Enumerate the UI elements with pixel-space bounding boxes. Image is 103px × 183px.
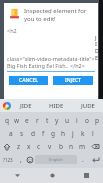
button[interactable]: a	[5, 127, 16, 140]
button[interactable]: r	[32, 114, 42, 127]
button[interactable]: m	[77, 140, 88, 153]
button[interactable]: English	[35, 155, 77, 164]
staticText: x	[27, 142, 31, 151]
button[interactable]: b	[55, 140, 66, 153]
button[interactable]: l	[88, 127, 98, 140]
button[interactable]: u	[62, 114, 72, 127]
staticText: <h2	[7, 27, 17, 34]
button[interactable]: o	[82, 114, 92, 127]
button[interactable]: y	[52, 114, 62, 127]
button[interactable]: q	[1, 114, 12, 127]
button[interactable]: f	[38, 127, 48, 140]
button[interactable]: x	[24, 140, 34, 153]
staticText: Inspected element for you to edit!	[24, 7, 87, 23]
staticText: HIDE	[49, 102, 64, 110]
staticText: s	[20, 129, 24, 138]
button[interactable]: t	[42, 114, 52, 127]
other: Inspector icon	[9, 8, 20, 19]
staticText: h	[61, 129, 66, 138]
button[interactable]: j	[68, 127, 78, 140]
staticText: t	[46, 116, 49, 125]
staticText: .	[82, 155, 84, 164]
staticText: n	[69, 142, 74, 151]
staticText: JIDE	[20, 102, 32, 110]
staticText: o	[85, 116, 89, 125]
staticText: z	[17, 142, 21, 151]
button[interactable]: Shift	[0, 140, 14, 153]
button[interactable]: ?123	[0, 153, 16, 166]
button[interactable]: Backspace	[88, 140, 103, 153]
staticText: j	[72, 129, 74, 138]
staticText: b	[59, 142, 63, 151]
button[interactable]: e	[22, 114, 32, 127]
button[interactable]: CANCEL	[9, 76, 48, 85]
staticText: Big Fish Eating Eel Fish.. </h2>	[7, 62, 85, 69]
button[interactable]: s	[16, 127, 27, 140]
button[interactable]: HIDE	[41, 99, 72, 112]
button[interactable]: Home	[35, 168, 69, 183]
staticText: d	[31, 129, 35, 138]
button[interactable]: Google keyboard options	[3, 102, 11, 110]
button[interactable]: JIDE	[11, 99, 41, 112]
staticText: CANCEL	[19, 77, 38, 84]
staticText: f	[42, 129, 45, 138]
button[interactable]: Recent apps	[69, 168, 103, 183]
staticText: r	[36, 116, 39, 125]
button[interactable]: c	[34, 140, 44, 153]
staticText: ?123	[3, 157, 13, 163]
button[interactable]: JUDE	[72, 99, 103, 112]
staticText: g	[51, 129, 55, 138]
button[interactable]: z	[14, 140, 24, 153]
button[interactable]: h	[58, 127, 68, 140]
button[interactable]: Back	[0, 168, 35, 183]
staticText: e	[25, 116, 29, 125]
button[interactable]: INJECT	[53, 76, 93, 85]
staticText: English	[49, 157, 63, 162]
staticText: l	[92, 129, 94, 138]
button[interactable]: .	[78, 153, 87, 166]
staticText: w	[14, 116, 20, 125]
staticText: m	[79, 142, 86, 151]
button[interactable]: i	[72, 114, 82, 127]
button[interactable]: Emoji	[25, 153, 34, 166]
staticText: k	[81, 129, 85, 138]
button[interactable]: k	[78, 127, 88, 140]
staticText: u	[65, 116, 70, 125]
button[interactable]: v	[44, 140, 55, 153]
button[interactable]: p	[92, 114, 102, 127]
button[interactable]: w	[12, 114, 22, 127]
button[interactable]: n	[66, 140, 77, 153]
staticText: y	[55, 116, 59, 125]
button[interactable]: ,	[16, 153, 25, 166]
staticText: a	[9, 129, 13, 138]
staticText: v	[48, 142, 52, 151]
staticText: INJECT	[65, 77, 81, 84]
staticText: p	[95, 116, 99, 125]
staticText: q	[5, 116, 9, 125]
staticText: i	[76, 116, 78, 125]
button[interactable]: g	[48, 127, 58, 140]
button[interactable]: d	[27, 127, 38, 140]
staticText: class="slim-video-metadata-title">	[7, 55, 95, 62]
staticText: c	[37, 142, 41, 151]
staticText: ,	[20, 155, 22, 164]
staticText: JUDE	[81, 102, 95, 110]
button[interactable]: Enter	[87, 153, 103, 166]
